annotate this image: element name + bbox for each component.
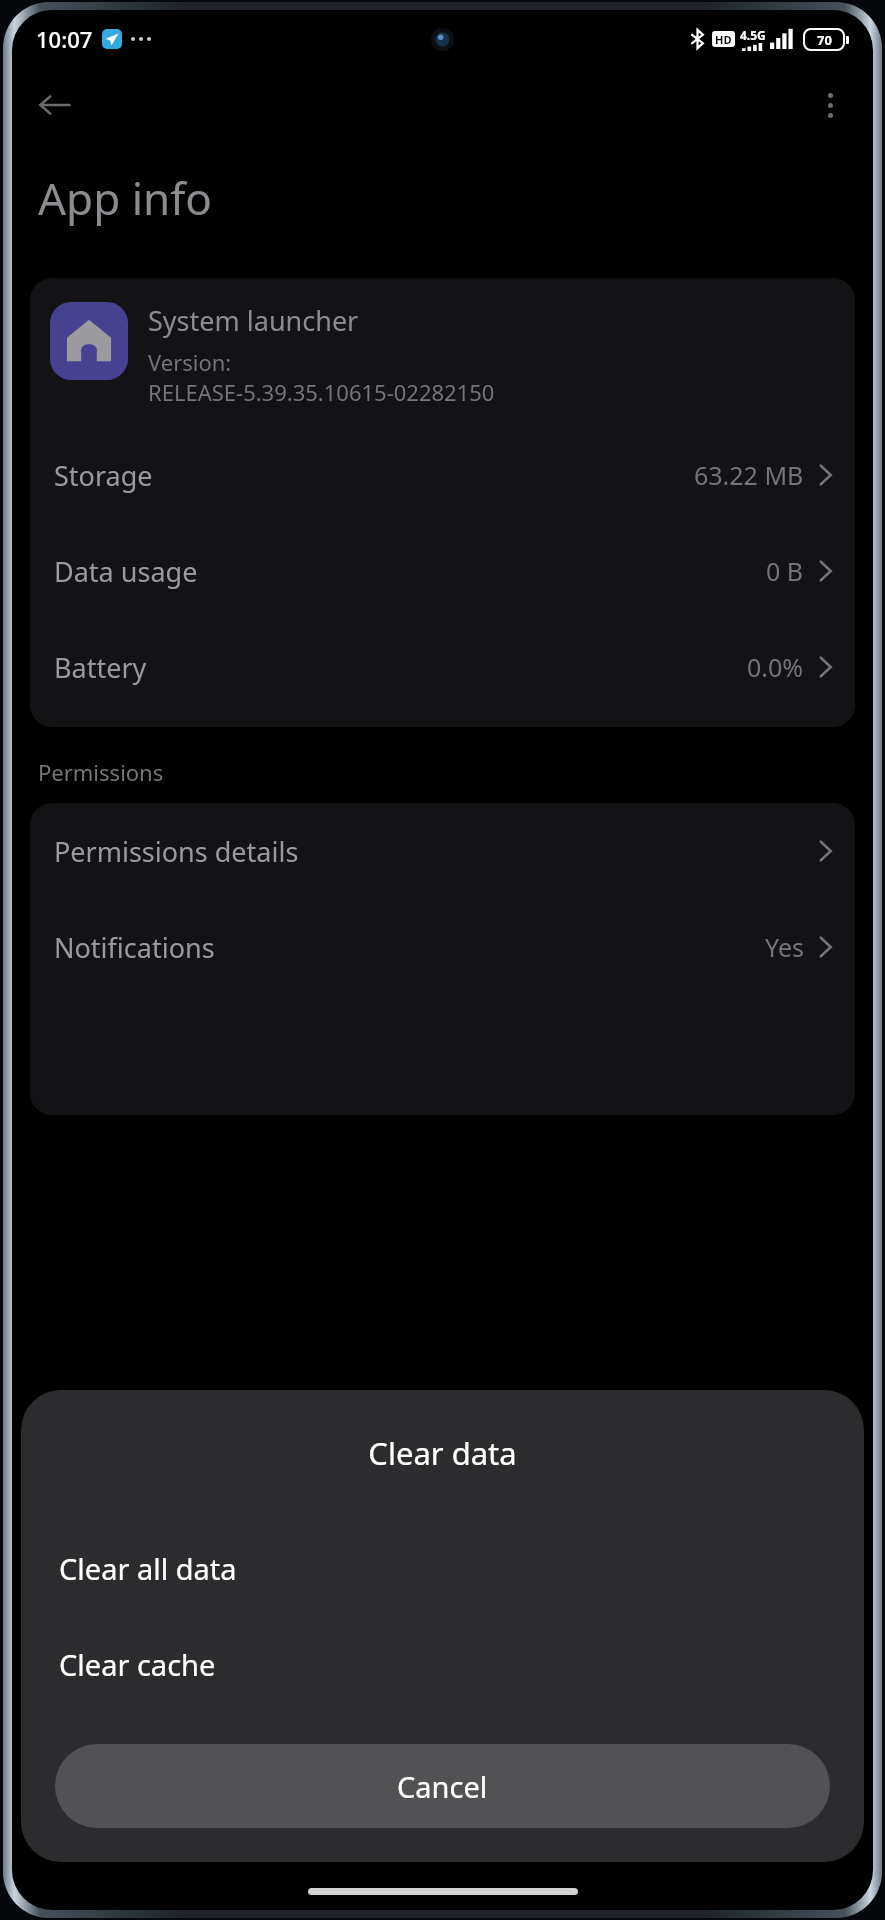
- button[interactable]: System launcher: [30, 278, 855, 427]
- staticText: 63.22 MB: [694, 458, 804, 492]
- staticText: Storage: [54, 457, 153, 494]
- staticText: 4.5G: [740, 27, 766, 43]
- button[interactable]: Data usage: [30, 523, 855, 619]
- button[interactable]: Battery: [30, 619, 855, 715]
- staticText: Clear cache: [59, 1645, 216, 1684]
- staticText: Clear all data: [59, 1549, 237, 1588]
- button[interactable]: Storage: [30, 427, 855, 523]
- staticText: Permissions: [38, 757, 164, 787]
- staticText: System launcher: [148, 302, 359, 339]
- staticText: RELEASE-5.39.35.10615-02282150: [148, 377, 495, 407]
- staticText: 10:07: [36, 24, 93, 54]
- staticText: Yes: [765, 930, 804, 964]
- button[interactable]: Clear all data: [21, 1520, 864, 1616]
- staticText: Cancel: [397, 1767, 488, 1806]
- button[interactable]: More options: [801, 76, 859, 134]
- staticText: 70: [817, 31, 832, 49]
- staticText: Version:: [148, 347, 232, 377]
- staticText: 0 B: [766, 554, 804, 588]
- staticText: Battery: [54, 649, 147, 686]
- staticText: 0.0%: [747, 650, 804, 684]
- staticText: HD: [715, 32, 732, 47]
- button[interactable]: Clear cache: [21, 1616, 864, 1712]
- staticText: Clear data: [21, 1432, 864, 1474]
- staticText: Permissions details: [54, 833, 299, 870]
- button[interactable]: Cancel: [55, 1744, 830, 1828]
- staticText: Data usage: [54, 553, 198, 590]
- staticText: App info: [38, 168, 212, 228]
- button[interactable]: Permissions details: [30, 803, 855, 899]
- button[interactable]: Notifications: [30, 899, 855, 995]
- button[interactable]: Back: [24, 74, 86, 136]
- staticText: Notifications: [54, 929, 215, 966]
